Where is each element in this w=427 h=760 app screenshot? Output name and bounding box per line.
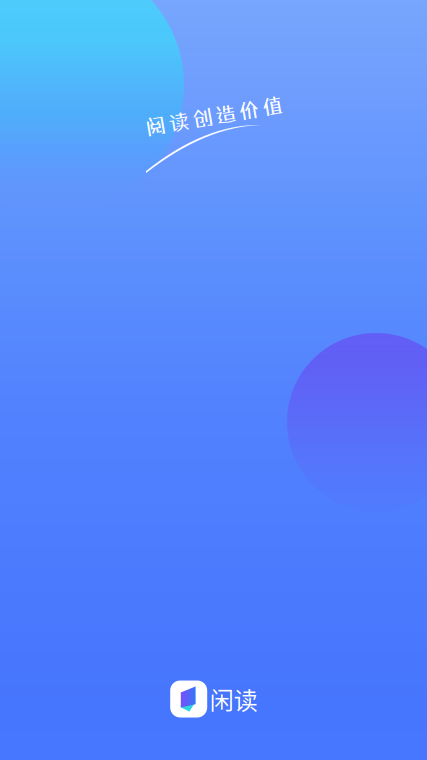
staticText: 闲读: [210, 682, 258, 716]
staticText: 阅: [144, 104, 165, 128]
staticText: 创: [192, 104, 213, 128]
staticText: 造: [215, 104, 236, 128]
staticText: 价: [239, 104, 260, 128]
staticText: 读: [168, 104, 189, 128]
staticText: 值: [262, 104, 283, 128]
